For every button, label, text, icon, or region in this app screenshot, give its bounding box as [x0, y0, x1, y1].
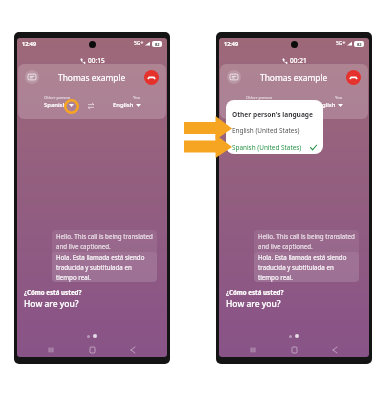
staticText: 12:49: [22, 40, 37, 47]
staticText: You: [335, 95, 343, 101]
button[interactable]: End call: [346, 70, 361, 85]
button[interactable]: You: [113, 95, 141, 109]
staticText: English: [315, 101, 336, 109]
button[interactable]: End call: [144, 70, 159, 85]
staticText: 12:49: [224, 40, 239, 47]
button[interactable]: Spanish (United States): [226, 139, 323, 154]
staticText: Other person: [246, 95, 273, 101]
button[interactable]: Other person: [44, 95, 74, 109]
staticText: Thomas example: [260, 72, 328, 83]
staticText: Other person's language: [232, 110, 313, 119]
staticText: Spanish (United States): [232, 143, 302, 152]
staticText: 5G+: [134, 40, 144, 47]
staticText: 82: [357, 42, 362, 47]
staticText: 5G+: [336, 40, 346, 47]
button[interactable]: You: [315, 95, 343, 109]
button[interactable]: Recents: [44, 343, 58, 357]
staticText: Hello. This call is being translated and…: [56, 232, 153, 251]
button[interactable]: Back: [328, 343, 342, 357]
button[interactable]: Recents: [246, 343, 260, 357]
staticText: Thomas example: [58, 72, 126, 83]
staticText: Spanish: [44, 101, 67, 109]
button[interactable]: Live caption: [227, 70, 241, 84]
staticText: You: [133, 95, 141, 101]
staticText: 00:15: [88, 56, 105, 65]
button[interactable]: Home: [287, 343, 301, 357]
staticText: How are you?: [24, 298, 79, 310]
button[interactable]: English (United States): [226, 122, 323, 139]
staticText: 00:21: [290, 56, 307, 65]
staticText: Other person: [44, 95, 71, 101]
staticText: 82: [155, 42, 160, 47]
staticText: How are you?: [226, 298, 281, 310]
staticText: Hello. This call is being translated and…: [258, 232, 355, 251]
staticText: ¿Cómo está usted?: [226, 288, 284, 296]
staticText: ¿Cómo está usted?: [24, 288, 82, 296]
staticText: English (United States): [232, 126, 300, 135]
button[interactable]: Live caption: [25, 70, 39, 84]
staticText: Hola. Esta llamada está siendo traducida…: [258, 253, 355, 282]
staticText: Hola. Esta llamada está siendo traducida…: [56, 253, 153, 282]
staticText: English: [113, 101, 134, 109]
button[interactable]: Home: [85, 343, 99, 357]
button[interactable]: Back: [126, 343, 140, 357]
button[interactable]: Other person: [246, 95, 276, 109]
